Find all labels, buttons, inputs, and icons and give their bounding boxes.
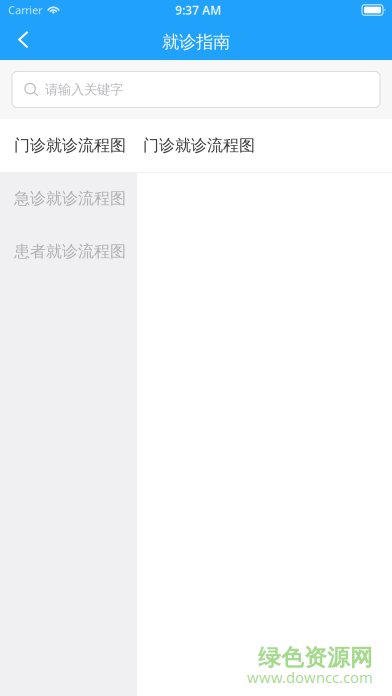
staticText: 9:37 AM [175, 2, 221, 18]
staticText: Carrier [8, 3, 42, 17]
staticText: 绿色资源网 [258, 644, 373, 671]
button[interactable]: 门诊就诊流程图 [0, 119, 137, 172]
staticText: 急诊就诊流程图 [14, 189, 126, 208]
button[interactable]: Back [0, 20, 56, 60]
staticText: 请输入关键字 [45, 81, 123, 98]
button[interactable]: 请输入关键字 [12, 71, 380, 107]
staticText: 患者就诊流程图 [14, 242, 126, 261]
button[interactable]: 门诊就诊流程图 [137, 119, 392, 172]
button[interactable]: 急诊就诊流程图 [0, 172, 137, 225]
staticText: 就诊指南 [162, 31, 230, 53]
staticText: www.downcc.com [247, 667, 373, 687]
staticText: 门诊就诊流程图 [143, 136, 255, 155]
button[interactable]: 患者就诊流程图 [0, 225, 137, 278]
staticText: 门诊就诊流程图 [14, 136, 126, 155]
